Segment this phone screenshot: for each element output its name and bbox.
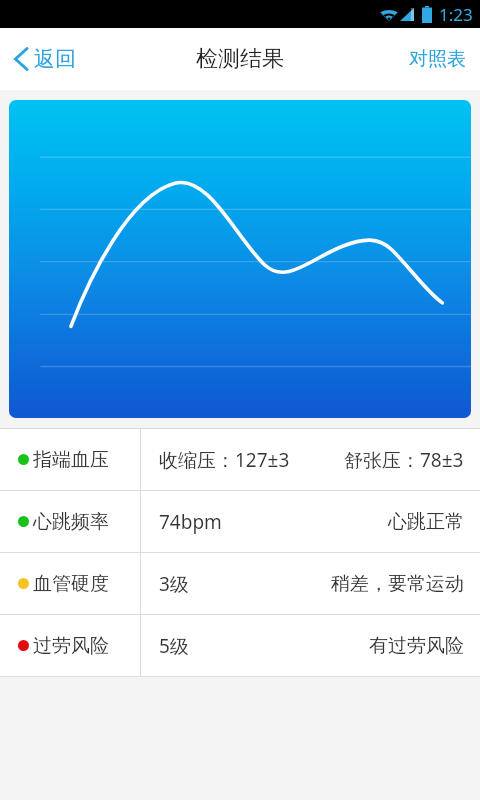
staticText: 指端血压	[33, 448, 109, 472]
staticText: 3级	[159, 571, 189, 597]
staticText: 1:23	[439, 3, 473, 26]
button[interactable]: 指端血压	[0, 429, 480, 490]
staticText: 舒张压：78±3	[344, 447, 464, 473]
button[interactable]: 过劳风险	[0, 615, 480, 676]
button[interactable]	[9, 100, 471, 418]
staticText: 返回	[34, 46, 76, 72]
staticText: 74bpm	[159, 509, 222, 535]
staticText: 稍差，要常运动	[331, 572, 464, 596]
staticText: 有过劳风险	[369, 634, 464, 658]
staticText: 心跳频率	[33, 510, 109, 534]
other: Back	[14, 47, 27, 71]
staticText: 对照表	[409, 47, 466, 71]
button[interactable]: Back	[0, 28, 92, 90]
staticText: 过劳风险	[33, 634, 109, 658]
staticText: 心跳正常	[388, 510, 464, 534]
button[interactable]: 血管硬度	[0, 553, 480, 614]
staticText: 收缩压：127±3	[159, 447, 290, 473]
button[interactable]: 对照表	[395, 28, 480, 90]
button[interactable]: 心跳频率	[0, 491, 480, 552]
staticText: 血管硬度	[33, 572, 109, 596]
staticText: 5级	[159, 633, 189, 659]
staticText: 检测结果	[196, 45, 284, 73]
